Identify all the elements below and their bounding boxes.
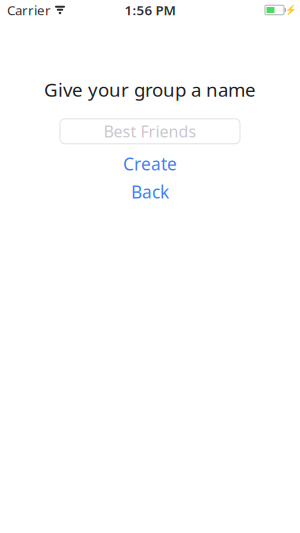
staticText: Carrier <box>7 1 51 19</box>
button[interactable]: Create <box>0 153 300 175</box>
staticText: Give your group a name <box>44 77 256 102</box>
staticText: ⚡ <box>284 5 296 15</box>
staticText: Best Friends <box>103 121 196 142</box>
button[interactable]: Best Friends <box>60 119 240 144</box>
button[interactable]: Back <box>0 181 300 203</box>
staticText: Back <box>131 180 169 203</box>
staticText: Create <box>123 152 177 175</box>
staticText: 1:56 PM <box>124 1 175 19</box>
